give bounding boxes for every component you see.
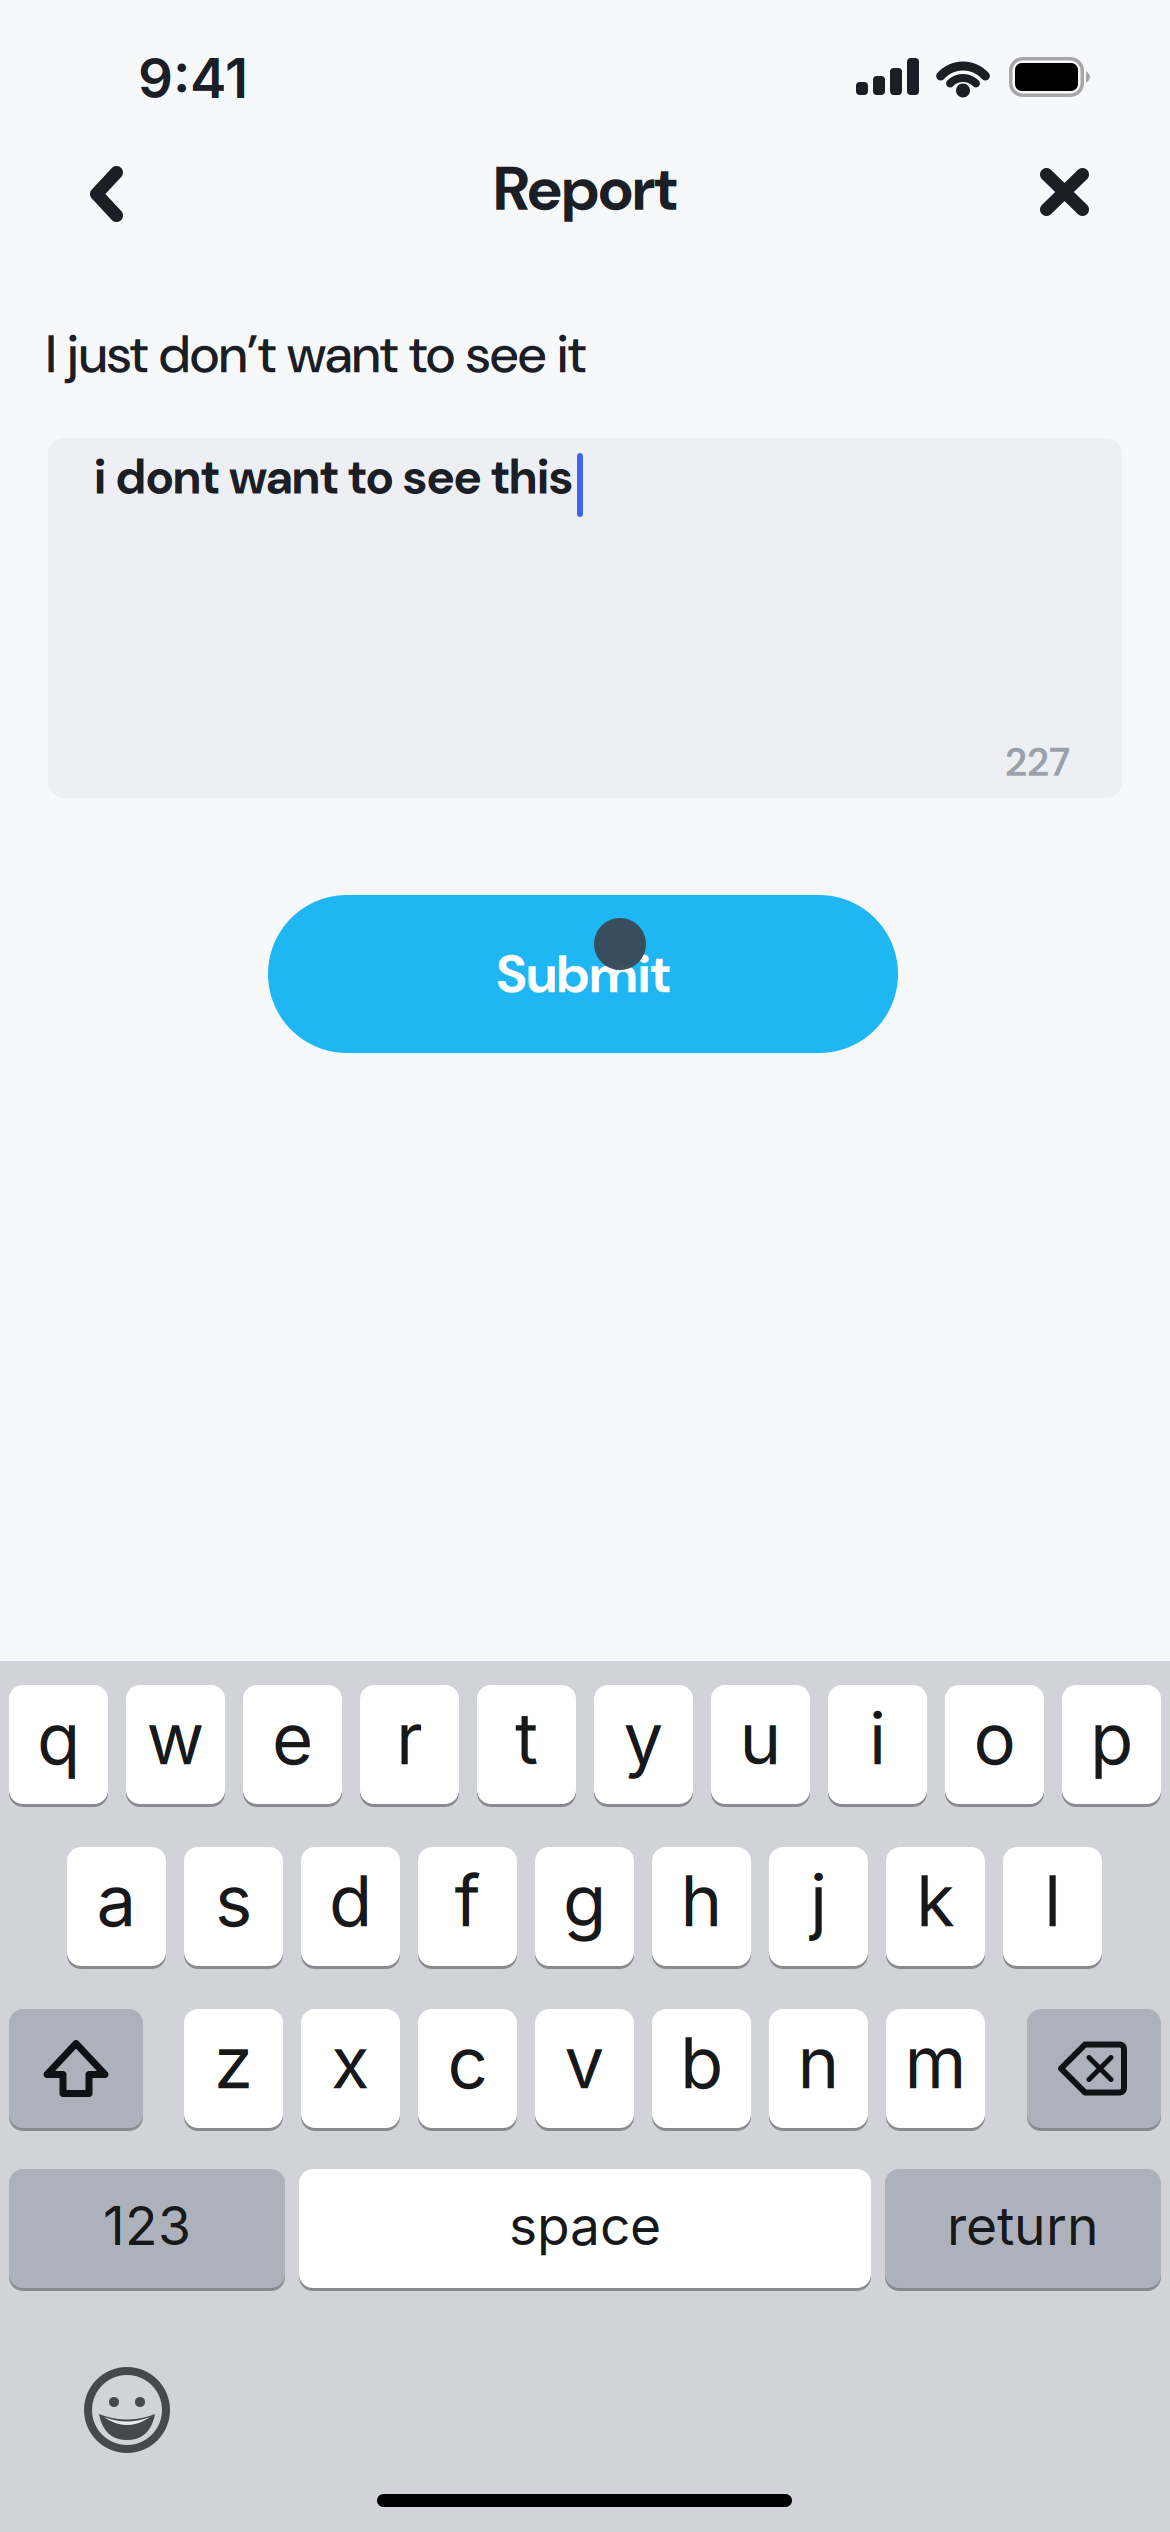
button[interactable]: h	[652, 1847, 751, 1966]
staticText: c	[447, 2020, 487, 2105]
staticText: v	[564, 2020, 604, 2105]
staticText: q	[37, 1696, 80, 1781]
button[interactable]: Emoji	[84, 2367, 170, 2453]
button[interactable]: z	[184, 2009, 283, 2128]
button[interactable]: a	[67, 1847, 166, 1966]
button[interactable]: d	[301, 1847, 400, 1966]
staticText: 123	[103, 2193, 191, 2258]
button[interactable]: Shift	[9, 2009, 143, 2128]
staticText: i dont want to see this	[94, 446, 573, 508]
button[interactable]: Close	[1024, 151, 1104, 235]
staticText: l	[1044, 1858, 1061, 1943]
button[interactable]: x	[301, 2009, 400, 2128]
button[interactable]: c	[418, 2009, 517, 2128]
staticText: 227	[1005, 736, 1070, 788]
staticText: f	[454, 1858, 480, 1943]
button[interactable]: j	[769, 1847, 868, 1966]
staticText: x	[331, 2020, 370, 2105]
button[interactable]: i	[828, 1685, 927, 1804]
staticText: y	[623, 1696, 663, 1781]
staticText: s	[215, 1858, 252, 1943]
button[interactable]: Back	[62, 151, 142, 235]
button[interactable]: q	[9, 1685, 108, 1804]
button[interactable]: k	[886, 1847, 985, 1966]
staticText: n	[797, 2020, 839, 2105]
button[interactable]: return	[885, 2169, 1161, 2288]
staticText: a	[96, 1858, 136, 1943]
button[interactable]: 123	[9, 2169, 285, 2288]
staticText: b	[680, 2020, 723, 2105]
button[interactable]: w	[126, 1685, 225, 1804]
button[interactable]: n	[769, 2009, 868, 2128]
staticText: Report	[493, 149, 676, 229]
button[interactable]: g	[535, 1847, 634, 1966]
button[interactable]: v	[535, 2009, 634, 2128]
staticText: u	[739, 1696, 781, 1781]
staticText: d	[329, 1858, 372, 1943]
staticText: 9:41	[138, 45, 248, 111]
button[interactable]: f	[418, 1847, 517, 1966]
button[interactable]: r	[360, 1685, 459, 1804]
staticText: o	[973, 1696, 1015, 1781]
staticText: p	[1090, 1696, 1133, 1781]
staticText: h	[680, 1858, 722, 1943]
staticText: space	[509, 2193, 661, 2258]
button[interactable]: Delete	[1027, 2009, 1161, 2128]
button[interactable]: p	[1062, 1685, 1161, 1804]
staticText: t	[515, 1696, 538, 1781]
staticText: g	[563, 1858, 606, 1943]
button[interactable]: t	[477, 1685, 576, 1804]
button[interactable]: b	[652, 2009, 751, 2128]
button[interactable]: o	[945, 1685, 1044, 1804]
button[interactable]: space	[299, 2169, 871, 2288]
staticText: i	[869, 1696, 886, 1781]
button[interactable]: Submit	[268, 895, 898, 1053]
button[interactable]: s	[184, 1847, 283, 1966]
button[interactable]: y	[594, 1685, 693, 1804]
staticText: e	[272, 1696, 313, 1781]
button[interactable]: u	[711, 1685, 810, 1804]
staticText: I just don’t want to see it	[46, 320, 586, 389]
button[interactable]: l	[1003, 1847, 1102, 1966]
button[interactable]: e	[243, 1685, 342, 1804]
staticText: z	[214, 2020, 253, 2105]
button[interactable]: m	[886, 2009, 985, 2128]
staticText: r	[396, 1696, 423, 1781]
staticText: j	[810, 1858, 827, 1943]
staticText: return	[947, 2193, 1099, 2258]
staticText: Submit	[496, 939, 669, 1009]
staticText: k	[916, 1858, 955, 1943]
staticText: m	[904, 2020, 966, 2105]
staticText: w	[146, 1696, 204, 1781]
